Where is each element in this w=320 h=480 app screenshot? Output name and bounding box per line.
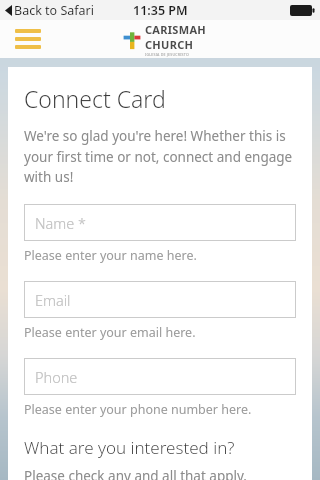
- staticText: 11:35 PM: [133, 2, 188, 19]
- staticText: Please enter your name here.: [24, 247, 197, 264]
- staticText: Back to Safari: [14, 2, 94, 19]
- staticText: Phone: [35, 367, 78, 387]
- staticText: What are you interested in?: [24, 436, 235, 459]
- button[interactable]: Email: [24, 281, 296, 318]
- staticText: CARISMAH: [145, 22, 207, 37]
- staticText: Please check any and all that apply.: [24, 467, 247, 480]
- staticText: Please enter your phone number here.: [24, 401, 252, 418]
- staticText: Please enter your email here.: [24, 324, 196, 341]
- staticText: Name *: [35, 213, 87, 233]
- button[interactable]: Menu: [12, 26, 44, 52]
- staticText: We're so glad you're here! Whether this …: [24, 127, 296, 186]
- staticText: Email: [35, 290, 71, 310]
- staticText: CHURCH: [145, 37, 194, 52]
- button[interactable]: Back to Safari: [5, 2, 94, 19]
- staticText: IGLESIA DE JESUCRISTO: [145, 52, 189, 57]
- button[interactable]: Name *: [24, 204, 296, 241]
- button[interactable]: Phone: [24, 358, 296, 395]
- staticText: Connect Card: [24, 83, 166, 114]
